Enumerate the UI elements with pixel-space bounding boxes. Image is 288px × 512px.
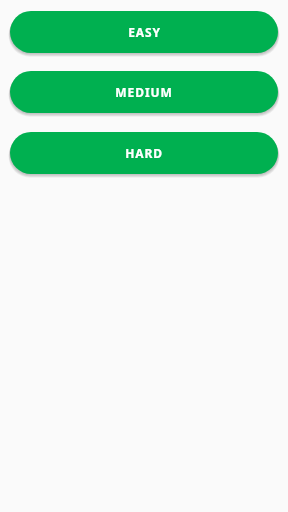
- staticText: MEDIUM: [115, 84, 173, 100]
- button[interactable]: MEDIUM: [10, 71, 278, 113]
- button[interactable]: EASY: [10, 11, 278, 53]
- button[interactable]: HARD: [10, 132, 278, 174]
- staticText: HARD: [125, 145, 163, 161]
- staticText: EASY: [128, 24, 161, 40]
